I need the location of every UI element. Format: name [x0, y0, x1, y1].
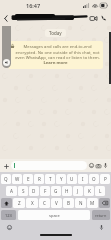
- staticText: Z: [18, 200, 21, 206]
- button[interactable]: Voice call: [99, 12, 109, 24]
- button[interactable]: K: [84, 186, 94, 196]
- staticText: W: [15, 176, 20, 182]
- staticText: Messages and calls are end-to-end encryp…: [15, 44, 100, 60]
- button[interactable]: J: [73, 186, 83, 196]
- staticText: V: [55, 200, 58, 206]
- button[interactable]: T: [45, 174, 55, 184]
- button[interactable]: R: [34, 174, 44, 184]
- staticText: R: [38, 176, 41, 182]
- button[interactable]: 123: [1, 210, 16, 220]
- staticText: return: [95, 213, 107, 218]
- staticText: B: [67, 200, 70, 206]
- button[interactable]: [11, 161, 87, 170]
- staticText: space: [49, 213, 60, 218]
- button[interactable]: Backspace: [99, 198, 110, 208]
- button[interactable]: A: [6, 186, 17, 196]
- button[interactable]: Y: [56, 174, 66, 184]
- button[interactable]: Voice message: [102, 162, 109, 169]
- button[interactable]: return: [92, 210, 110, 220]
- button[interactable]: G: [51, 186, 61, 196]
- button[interactable]: Attach: [2, 162, 10, 170]
- staticText: N: [79, 200, 83, 206]
- button[interactable]: Back: [2, 12, 10, 24]
- button[interactable]: Q: [1, 174, 11, 184]
- button[interactable]: Camera: [95, 162, 102, 169]
- staticText: M: [90, 200, 95, 206]
- button[interactable]: C: [39, 198, 50, 208]
- staticText: O: [92, 176, 96, 182]
- staticText: Today: [49, 30, 62, 36]
- button[interactable]: B: [63, 198, 74, 208]
- staticText: Q: [4, 176, 8, 182]
- button[interactable]: Emoji keyboard: [5, 223, 14, 232]
- button[interactable]: Z: [13, 198, 25, 208]
- button[interactable]: space: [18, 210, 90, 220]
- button[interactable]: M: [87, 198, 98, 208]
- staticText: F: [44, 188, 47, 194]
- button[interactable]: L: [95, 186, 105, 196]
- staticText: E: [27, 176, 30, 182]
- button[interactable]: F: [40, 186, 50, 196]
- staticText: T: [49, 176, 52, 182]
- staticText: Learn more: [43, 60, 68, 66]
- staticText: L: [99, 188, 102, 194]
- staticText: H: [65, 188, 69, 194]
- button[interactable]: Video call: [88, 12, 98, 24]
- staticText: I: [82, 176, 84, 182]
- staticText: D: [32, 188, 36, 194]
- button[interactable]: E: [23, 174, 33, 184]
- button[interactable]: I: [78, 174, 88, 184]
- button[interactable]: U: [67, 174, 77, 184]
- staticText: K: [88, 188, 91, 194]
- button[interactable]: D: [29, 186, 39, 196]
- button[interactable]: Dictation: [97, 223, 106, 232]
- staticText: G: [54, 188, 58, 194]
- button[interactable]: [10, 11, 88, 24]
- button[interactable]: H: [62, 186, 72, 196]
- button[interactable]: X: [26, 198, 38, 208]
- staticText: U: [70, 176, 74, 182]
- staticText: 16:47: [26, 2, 41, 9]
- button[interactable]: O: [89, 174, 99, 184]
- staticText: A: [10, 188, 13, 194]
- button[interactable]: P: [100, 174, 110, 184]
- button[interactable]: S: [18, 186, 28, 196]
- button[interactable]: V: [51, 198, 62, 208]
- button[interactable]: W: [12, 174, 22, 184]
- staticText: Y: [60, 176, 63, 182]
- staticText: 123: [5, 213, 12, 218]
- button[interactable]: Emoji: [88, 162, 95, 169]
- button[interactable]: N: [75, 198, 86, 208]
- button[interactable]: Messages and calls are end-to-end encryp…: [8, 41, 103, 69]
- staticText: J: [77, 188, 79, 194]
- button[interactable]: Shift: [1, 198, 12, 208]
- staticText: S: [22, 188, 25, 194]
- staticText: C: [43, 200, 46, 206]
- staticText: X: [31, 200, 34, 206]
- staticText: P: [104, 176, 107, 182]
